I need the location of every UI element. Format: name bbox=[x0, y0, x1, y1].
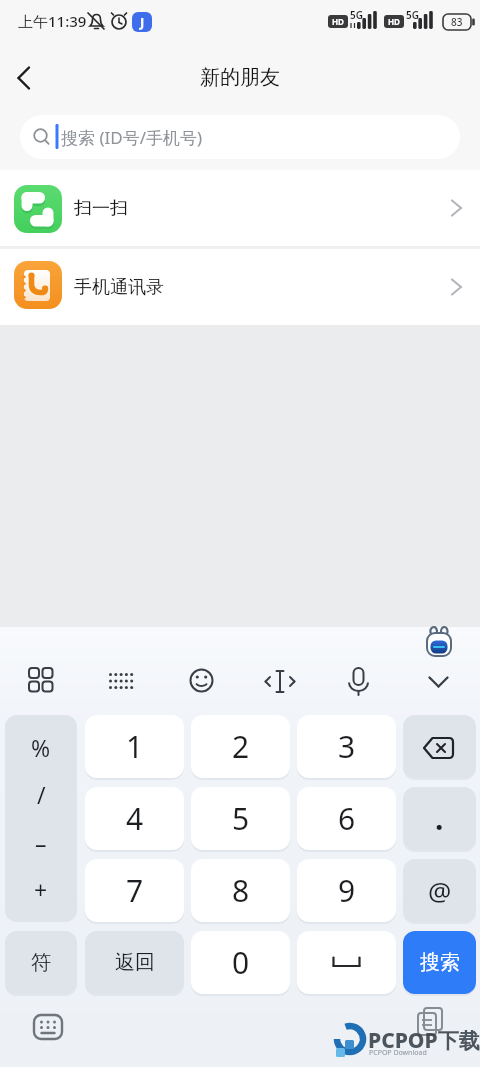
staticText: – bbox=[35, 827, 47, 858]
button[interactable]: @ bbox=[403, 859, 476, 922]
button[interactable]: 1 bbox=[85, 715, 184, 778]
staticText: PCPOP Download bbox=[369, 1048, 427, 1058]
button[interactable] bbox=[263, 665, 297, 699]
button[interactable] bbox=[104, 665, 138, 699]
button[interactable] bbox=[421, 665, 455, 699]
button[interactable]: 9 bbox=[297, 859, 396, 922]
staticText: 5G bbox=[406, 8, 419, 22]
staticText: J bbox=[140, 13, 145, 31]
staticText: 7 bbox=[126, 870, 144, 911]
staticText: 6 bbox=[338, 798, 356, 839]
staticText: 扫一扫 bbox=[74, 197, 128, 220]
staticText: 2 bbox=[232, 726, 250, 767]
button[interactable] bbox=[297, 931, 396, 994]
staticText: 返回 bbox=[115, 950, 155, 975]
staticText: HD bbox=[388, 16, 400, 27]
staticText: 搜索 (ID号/手机号) bbox=[61, 126, 203, 149]
button[interactable]: 5 bbox=[191, 787, 290, 850]
staticText: 4 bbox=[126, 798, 144, 839]
button[interactable]: 2 bbox=[191, 715, 290, 778]
staticText: + bbox=[34, 874, 48, 905]
button[interactable]: 4 bbox=[85, 787, 184, 850]
staticText: 上午11:39 bbox=[18, 11, 87, 31]
button[interactable]: 搜索 bbox=[403, 931, 476, 994]
staticText: 5 bbox=[232, 798, 250, 839]
staticText: 5G bbox=[350, 8, 363, 22]
staticText: 1 bbox=[126, 726, 144, 767]
staticText: % bbox=[31, 732, 51, 763]
button[interactable]: 3 bbox=[297, 715, 396, 778]
button[interactable] bbox=[185, 665, 219, 699]
staticText: PCPOP下载 bbox=[368, 1026, 480, 1052]
staticText: 8 bbox=[232, 870, 250, 911]
button[interactable]: 8 bbox=[191, 859, 290, 922]
button[interactable]: % bbox=[5, 715, 77, 922]
button[interactable]: 符 bbox=[5, 931, 77, 994]
staticText: 9 bbox=[338, 870, 356, 911]
button[interactable] bbox=[0, 249, 480, 325]
staticText: 3 bbox=[338, 726, 356, 767]
button[interactable] bbox=[412, 1002, 450, 1042]
staticText: 83 bbox=[451, 15, 463, 29]
staticText: / bbox=[37, 779, 46, 810]
staticText: @ bbox=[428, 873, 452, 908]
button[interactable] bbox=[0, 170, 480, 246]
staticText: 搜索 bbox=[420, 950, 460, 975]
staticText: 符 bbox=[31, 950, 51, 975]
button[interactable]: 0 bbox=[191, 931, 290, 994]
button[interactable]: . bbox=[403, 787, 476, 850]
button[interactable] bbox=[28, 1008, 68, 1046]
button[interactable] bbox=[342, 665, 376, 699]
staticText: 新的朋友 bbox=[200, 65, 280, 90]
button[interactable] bbox=[20, 115, 460, 159]
staticText: 0 bbox=[232, 942, 250, 983]
staticText: . bbox=[435, 798, 444, 839]
button[interactable] bbox=[403, 715, 476, 778]
button[interactable]: 6 bbox=[297, 787, 396, 850]
button[interactable] bbox=[24, 665, 58, 699]
staticText: 手机通讯录 bbox=[74, 276, 164, 299]
staticText: HD bbox=[332, 16, 344, 27]
button[interactable]: 返回 bbox=[85, 931, 184, 994]
button[interactable] bbox=[8, 62, 48, 94]
button[interactable]: 7 bbox=[85, 859, 184, 922]
